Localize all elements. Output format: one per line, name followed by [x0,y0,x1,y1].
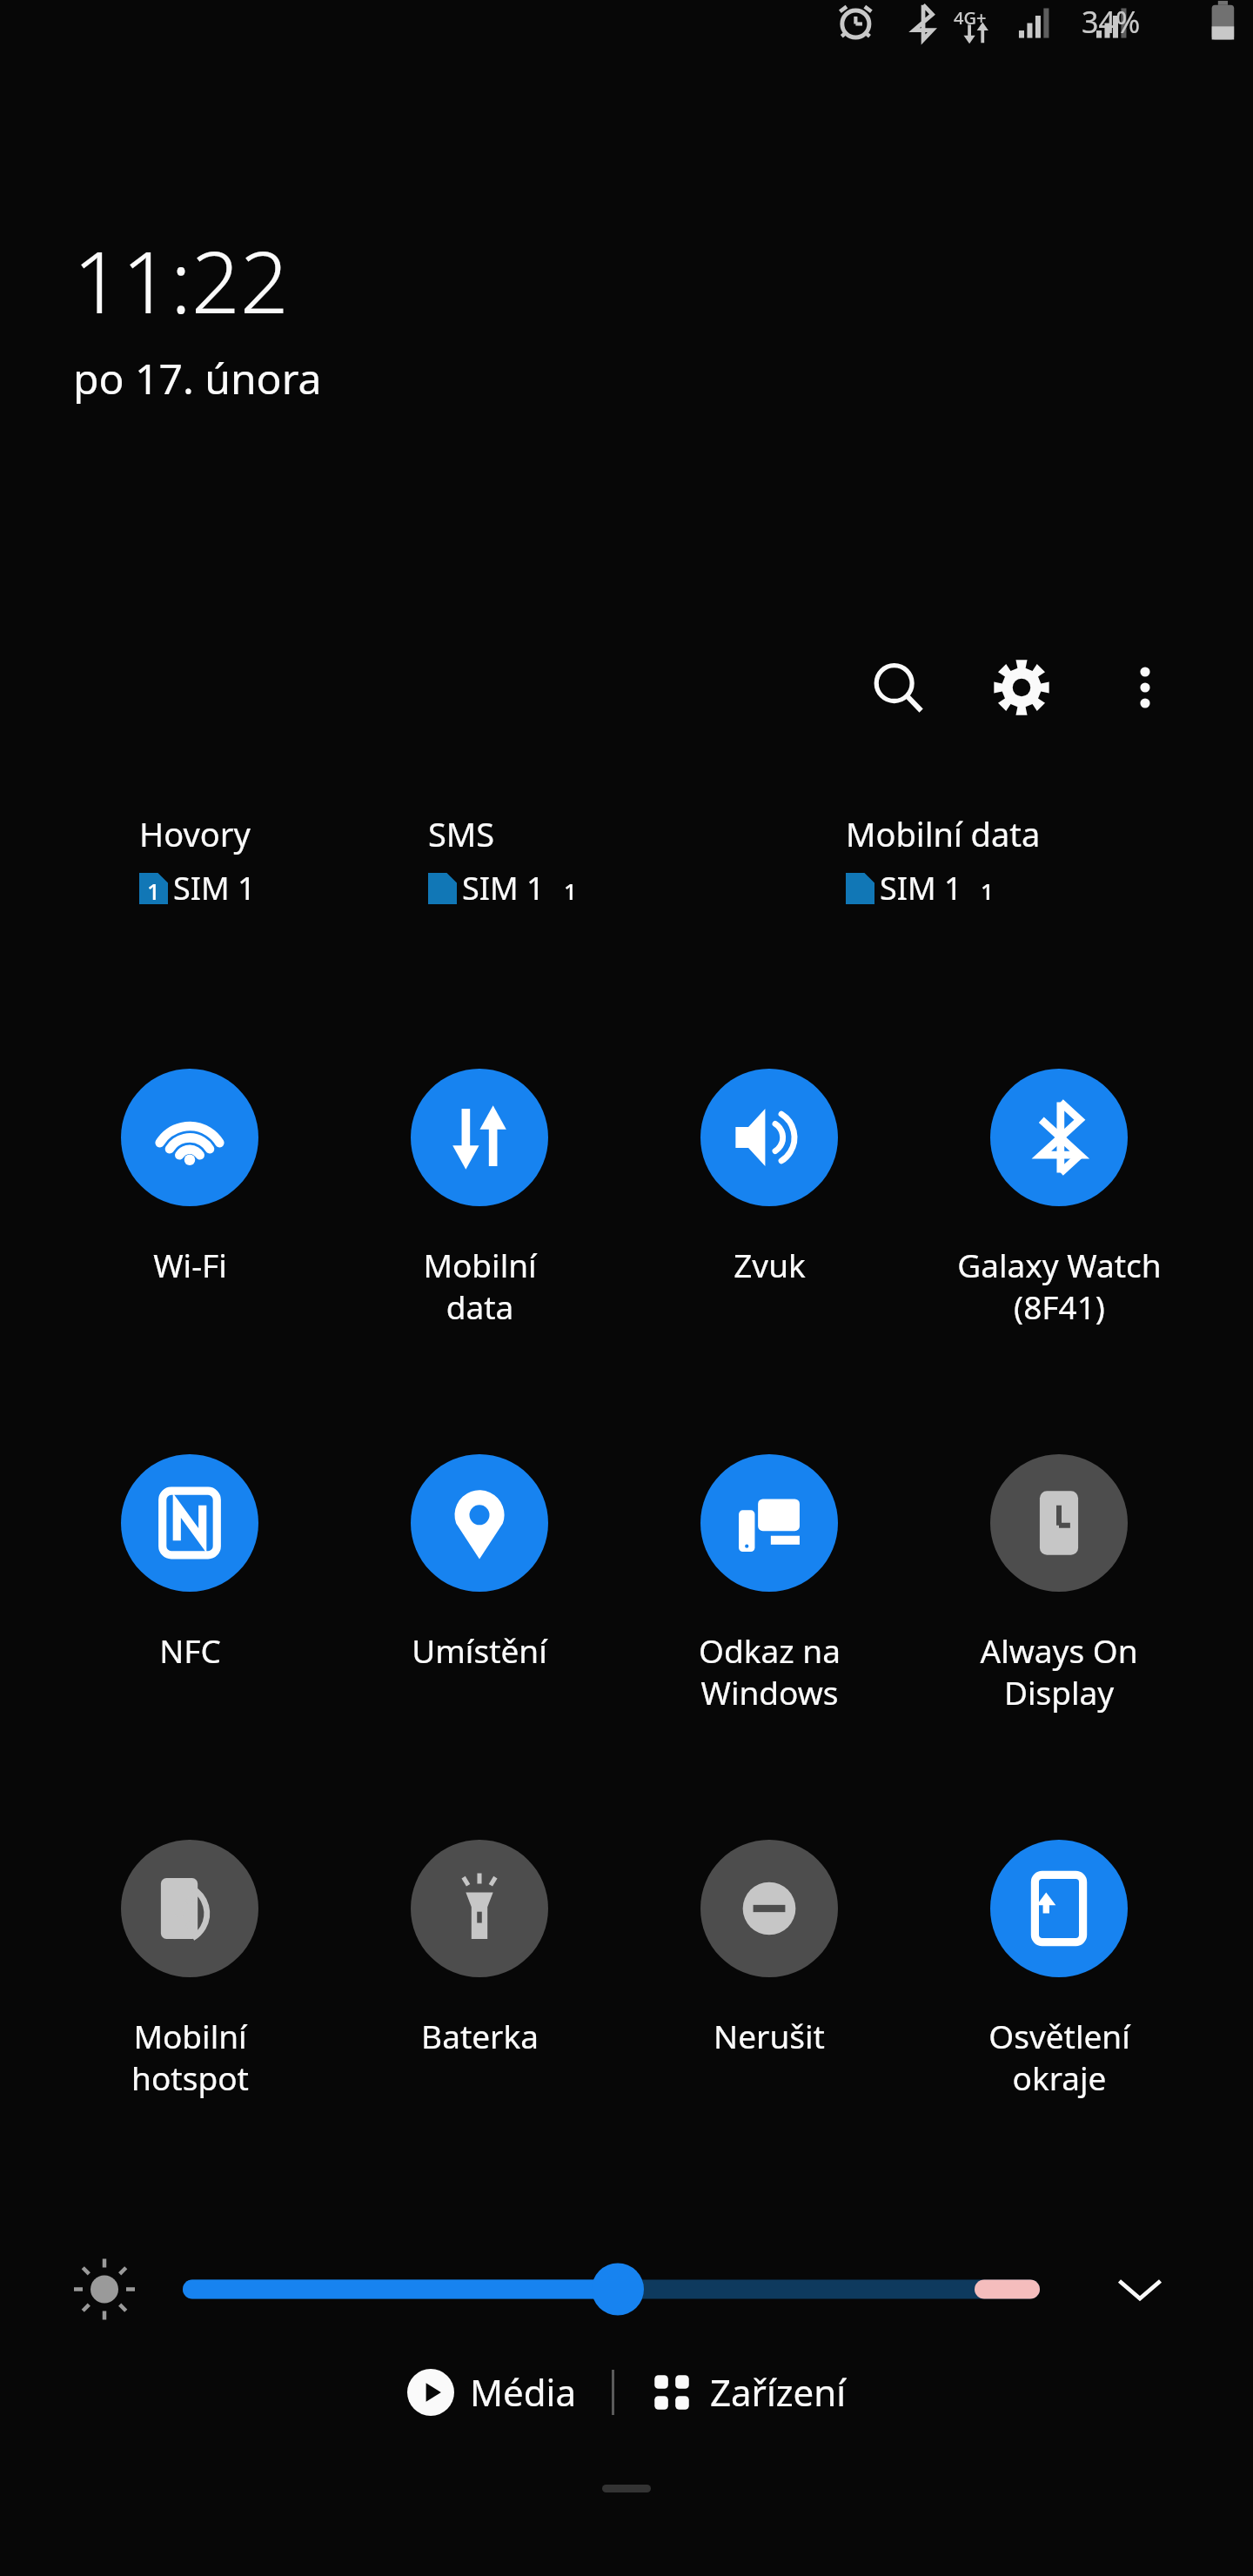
staticText: 4G+ [954,6,987,30]
button[interactable]: Always On Display [928,1454,1189,1714]
staticText: SMS [428,811,495,856]
staticText: Baterka [421,2014,539,2057]
staticText: po 17. února [73,350,322,406]
button[interactable]: Mobilní hotspot [59,1840,320,2100]
staticText: Zařízení [710,2367,846,2417]
staticText: Média [470,2367,577,2417]
staticText: Osvětlení okraje [988,2014,1130,2100]
staticText: NFC [159,1628,221,1672]
button[interactable]: Osvětlení okraje [928,1840,1189,2100]
button[interactable]: Mobilní data [846,811,1253,909]
button[interactable]: Search [846,635,950,740]
staticText: Mobilní data [846,811,1041,856]
button[interactable]: Wi-Fi [59,1069,320,1286]
button[interactable]: Odkaz na Windows [639,1454,900,1714]
staticText: Umístění [412,1628,547,1672]
staticText: Nerušit [714,2014,825,2057]
staticText: 1 [981,875,994,906]
staticText: Always On Display [980,1628,1138,1714]
staticText: SIM 1 [173,867,256,909]
staticText: SIM 1 [880,867,962,909]
staticText: Galaxy Watch (8F41) [957,1243,1162,1329]
staticText: Hovory [139,811,251,856]
staticText: Mobilní data [423,1243,537,1329]
button[interactable]: Expand [1088,2237,1192,2341]
button[interactable]: Mobilní data [349,1069,610,1329]
staticText: Wi-Fi [153,1243,227,1286]
button[interactable]: Nerušit [639,1840,900,2057]
button[interactable]: Galaxy Watch (8F41) [928,1069,1189,1329]
button[interactable]: Baterka [349,1840,610,2057]
staticText: Zvuk [734,1243,806,1286]
button[interactable]: More options [1093,635,1197,740]
staticText: 11:22 [73,222,289,338]
button[interactable]: Umístění [349,1454,610,1672]
button[interactable]: Hovory [139,811,418,909]
button[interactable]: NFC [59,1454,320,1672]
staticText: Odkaz na Windows [699,1628,841,1714]
staticText: 1 [147,875,160,906]
button[interactable]: Média [395,2358,589,2425]
button[interactable]: SMS [428,811,835,909]
staticText: 1 [564,875,577,906]
staticText: SIM 1 [462,867,545,909]
staticText: Mobilní hotspot [131,2014,249,2100]
button[interactable]: Zvuk [639,1069,900,1286]
button[interactable]: Settings [969,635,1074,740]
staticText: 34% [1082,2,1141,42]
button[interactable]: Zařízení [637,2358,858,2425]
